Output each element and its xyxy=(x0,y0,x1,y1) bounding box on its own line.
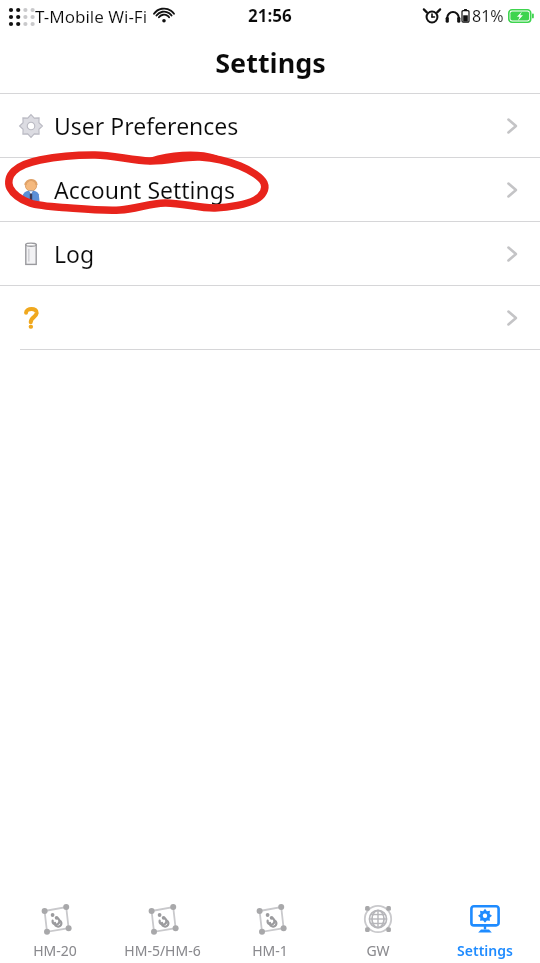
staticText: Settings xyxy=(457,941,513,960)
staticText: HM-5/HM-6 xyxy=(124,941,201,960)
button[interactable]: User Preferences xyxy=(0,94,540,157)
staticText: User Preferences xyxy=(54,110,239,141)
staticText: GW xyxy=(366,941,390,960)
button[interactable]: Settings xyxy=(432,895,538,963)
other: Open xyxy=(502,180,522,200)
other: Open xyxy=(502,244,522,264)
button[interactable]: Account Settings xyxy=(0,158,540,221)
staticText: 21:56 xyxy=(248,4,292,27)
staticText: Account Settings xyxy=(54,174,235,205)
button[interactable]: Log xyxy=(0,222,540,285)
staticText: HM-1 xyxy=(252,941,288,960)
staticText: 81% xyxy=(472,5,504,27)
button[interactable]: GW xyxy=(325,895,431,963)
staticText: Log xyxy=(54,238,95,269)
staticText: T-Mobile Wi-Fi xyxy=(35,5,148,28)
staticText: HM-20 xyxy=(33,941,77,960)
button[interactable]: HM-20 xyxy=(2,895,108,963)
button[interactable]: HM-5/HM-6 xyxy=(109,895,215,963)
button[interactable]: HM-1 xyxy=(217,895,323,963)
button[interactable]: Open xyxy=(0,286,540,349)
other: Open xyxy=(502,116,522,136)
other: Open xyxy=(502,308,522,328)
staticText: Settings xyxy=(215,44,326,81)
